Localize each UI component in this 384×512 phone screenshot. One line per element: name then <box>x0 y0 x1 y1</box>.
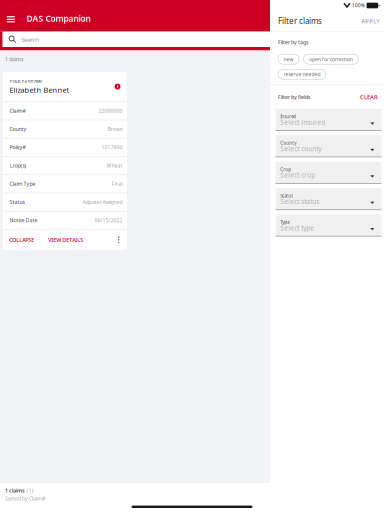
staticText: Notice Date <box>9 217 37 224</box>
staticText: Select insured <box>280 118 325 127</box>
staticText: County <box>9 126 26 133</box>
staticText: COLLAPSE <box>9 236 34 243</box>
staticText: Select type <box>280 223 314 232</box>
button[interactable]: Menu <box>3 15 19 28</box>
staticText: Crop(s) <box>9 162 26 169</box>
staticText: new <box>283 56 293 62</box>
button[interactable]: Type <box>275 214 381 236</box>
staticText: Search <box>21 35 39 43</box>
staticText: open for correction <box>309 56 353 62</box>
staticText: Claim# <box>9 107 25 114</box>
staticText: 1 claims <box>5 56 23 63</box>
staticText: reserve needed <box>283 71 320 78</box>
staticText: POLICY #1017890 <box>9 78 41 84</box>
staticText: Brown <box>107 126 122 133</box>
staticText: VIEW DETAILS <box>48 236 83 243</box>
button[interactable]: APPLY <box>359 13 381 29</box>
staticText: Sorted by Claim# <box>5 495 45 502</box>
staticText: 100% <box>352 2 365 8</box>
staticText: Policy# <box>9 144 25 151</box>
staticText: Elizabeth Bennet <box>9 85 69 95</box>
staticText: Select crop <box>280 171 315 179</box>
staticText: County <box>280 140 296 146</box>
button[interactable]: open for correction <box>303 54 358 64</box>
staticText: 22000000 <box>98 107 122 114</box>
button[interactable]: Status <box>275 188 381 210</box>
button[interactable]: CLEAR <box>358 90 380 104</box>
staticText: APPLY <box>361 17 379 25</box>
button[interactable]: County <box>275 135 381 157</box>
button[interactable]: More options <box>114 233 123 246</box>
button[interactable]: COLLAPSE <box>7 233 36 246</box>
button[interactable]: new <box>278 54 299 64</box>
staticText: Crop <box>280 166 291 172</box>
staticText: Status <box>9 199 24 206</box>
staticText: (1) <box>27 487 34 494</box>
staticText: 1 claims <box>5 487 25 494</box>
staticText: Select status <box>280 197 319 206</box>
staticText: 06/15/2022 <box>94 217 122 224</box>
staticText: Status <box>280 193 293 199</box>
staticText: Type <box>280 219 289 225</box>
staticText: Adjuster Assigned <box>82 199 122 206</box>
staticText: DAS Companion <box>27 13 91 24</box>
staticText: Final <box>111 180 122 187</box>
staticText: Select county <box>280 144 321 153</box>
staticText: Filter by tags <box>278 39 309 46</box>
staticText: Claim Type <box>9 180 35 187</box>
staticText: Wheat <box>106 162 122 169</box>
staticText: Insured <box>280 114 296 119</box>
staticText: Filter claims <box>278 16 322 26</box>
staticText: CLEAR <box>360 93 378 101</box>
staticText: Filter by fields <box>278 93 311 100</box>
button[interactable]: Insured <box>275 109 381 131</box>
button[interactable]: Crop <box>275 162 381 184</box>
button[interactable]: VIEW DETAILS <box>46 233 85 246</box>
staticText: 1017890 <box>101 144 122 151</box>
button[interactable]: reserve needed <box>278 69 326 79</box>
button[interactable]: Search <box>2 31 270 47</box>
